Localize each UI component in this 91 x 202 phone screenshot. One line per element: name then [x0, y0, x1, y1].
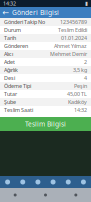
staticText: Peşin: [74, 82, 87, 90]
staticText: 2: [84, 58, 87, 66]
staticText: Desi: [4, 74, 15, 82]
staticText: ▮: [85, 0, 88, 7]
staticText: Kadıköy: [68, 98, 87, 106]
staticText: Gönderi Bilgisi: [12, 8, 59, 17]
button[interactable]: Tutar: [0, 90, 91, 98]
staticText: Adet: [4, 58, 15, 66]
staticText: Teslim Saati: [4, 106, 33, 114]
button[interactable]: Alıcı: [0, 50, 91, 58]
staticText: 45,00 TL: [67, 90, 87, 98]
staticText: 14:32: [74, 106, 87, 114]
button[interactable]: Desi: [0, 74, 91, 82]
button[interactable]: Ödeme Tipi: [0, 82, 91, 90]
button[interactable]: System: [30, 188, 61, 202]
button[interactable]: Adet: [0, 58, 91, 66]
staticText: Ödeme Tipi: [4, 82, 31, 90]
button[interactable]: Tool: [76, 176, 91, 188]
button[interactable]: Gönderen: [0, 42, 91, 50]
staticText: Tutar: [4, 90, 17, 98]
staticText: Gönderen: [4, 42, 28, 50]
staticText: Gönderi Takip No: [4, 18, 45, 26]
staticText: ←: [2, 8, 9, 17]
staticText: Durum: [4, 26, 21, 34]
staticText: 3,5 kg: [73, 66, 87, 74]
button[interactable]: Teslim Saati: [0, 106, 91, 114]
button[interactable]: Tool: [15, 176, 30, 188]
button[interactable]: Back: [0, 7, 12, 18]
button[interactable]: System: [61, 188, 91, 202]
button[interactable]: System: [0, 188, 30, 202]
button[interactable]: Tarih: [0, 34, 91, 42]
button[interactable]: Teslim Bilgisi: [0, 117, 91, 131]
staticText: Teslim Edildi: [58, 26, 87, 34]
button[interactable]: Ağırlık: [0, 66, 91, 74]
staticText: Tarih: [4, 34, 16, 42]
staticText: Ağırlık: [4, 66, 18, 74]
staticText: Şube: [4, 98, 16, 106]
button[interactable]: Gönderi Takip No: [0, 18, 91, 26]
staticText: Teslim Bilgisi: [25, 120, 66, 128]
staticText: 01.01.2024: [61, 34, 87, 42]
staticText: 123456789: [60, 18, 87, 26]
staticText: Mehmet Demir: [50, 50, 87, 58]
button[interactable]: Şube: [0, 98, 91, 106]
button[interactable]: Tool: [0, 176, 15, 188]
staticText: 14:32: [3, 0, 16, 7]
button[interactable]: Durum: [0, 26, 91, 34]
staticText: Ahmet Yılmaz: [54, 42, 87, 50]
button[interactable]: Tool: [30, 176, 45, 188]
button[interactable]: Tool: [61, 176, 76, 188]
button[interactable]: Tool: [45, 176, 61, 188]
staticText: 4: [84, 74, 87, 82]
staticText: Alıcı: [4, 50, 13, 58]
